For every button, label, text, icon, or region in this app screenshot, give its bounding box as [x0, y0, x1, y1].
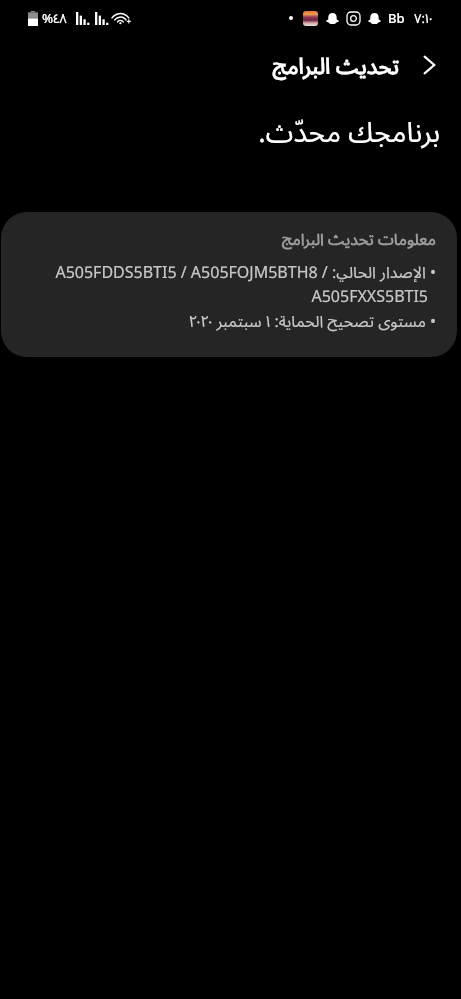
- staticText: تحديث البرامج: [272, 50, 399, 80]
- button[interactable]: معلومات تحديث البرامج: [1, 212, 457, 357]
- staticText: • مستوى تصحيح الحماية: ١ سبتمبر ٢٠٢٠: [23, 310, 436, 332]
- staticText: • ‏الإصدار الحالي: ‪A505FDDS5BTI5 / A505…: [23, 261, 436, 283]
- button[interactable]: Back: [414, 50, 444, 80]
- staticText: ٧:١٠: [414, 9, 433, 27]
- staticText: برنامجك محدّث.: [0, 112, 440, 150]
- staticText: معلومات تحديث البرامج: [23, 228, 436, 250]
- staticText: Bb: [388, 9, 405, 27]
- staticText: %٤٨: [42, 9, 67, 27]
- staticText: A505FXXS5BTI5: [23, 285, 428, 307]
